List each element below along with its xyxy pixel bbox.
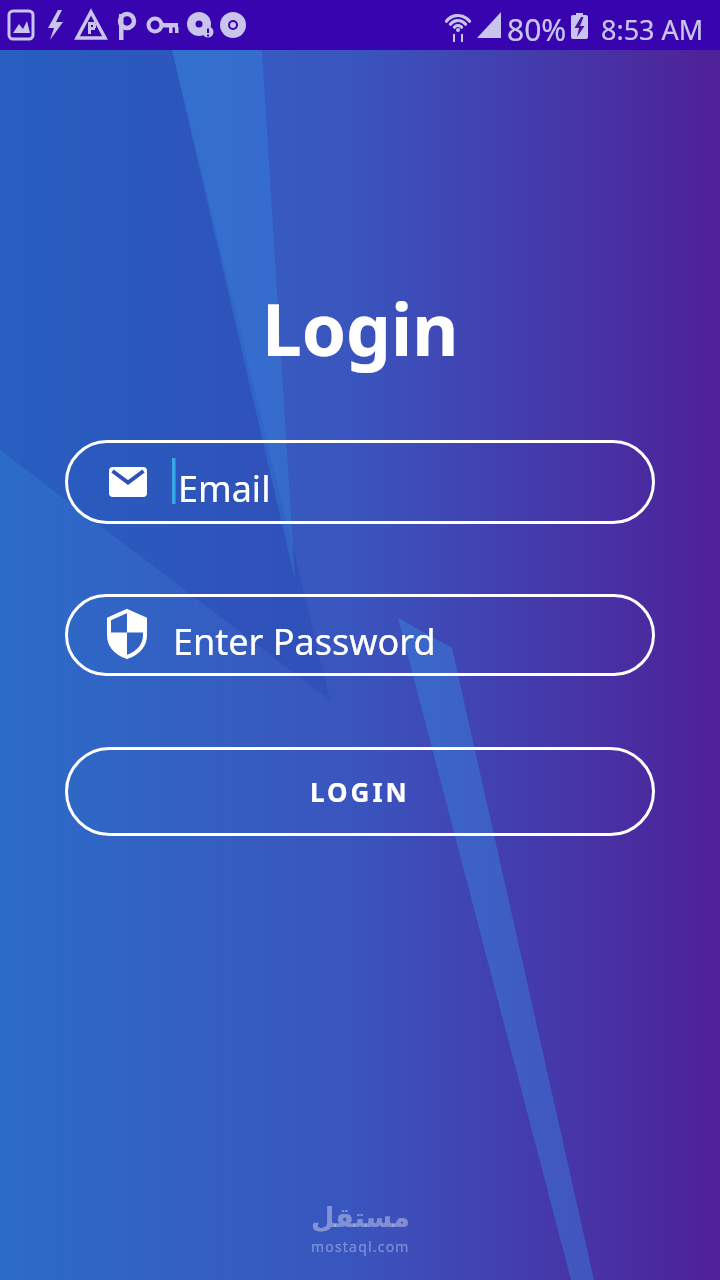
staticText: mostaql.com (311, 1237, 410, 1256)
button[interactable]: Enter Password (65, 594, 655, 676)
staticText: Enter Password (173, 617, 436, 666)
button[interactable]: Email (65, 440, 655, 524)
staticText: مستقل (311, 1202, 410, 1233)
staticText: Email (178, 464, 271, 513)
staticText: LOGIN (310, 774, 410, 809)
button[interactable]: LOGIN (65, 747, 655, 836)
staticText: 80% (507, 9, 567, 50)
staticText: 8:53 AM (601, 11, 704, 48)
staticText: Login (262, 280, 459, 377)
